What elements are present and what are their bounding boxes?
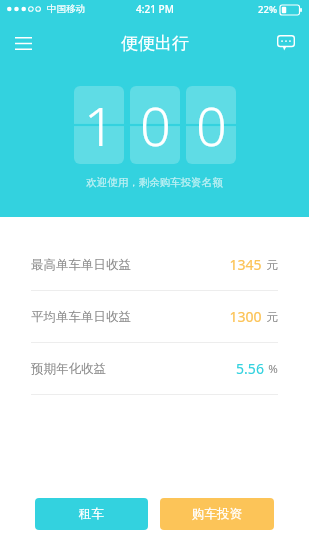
button[interactable]: 购车投资 [160,498,274,530]
staticText: 0 [196,88,227,162]
staticText: 租车 [79,506,104,522]
staticText: 预期年化收益 [31,361,106,377]
staticText: 1 [84,88,115,162]
button[interactable]: 平均单车单日收益 [0,291,309,342]
staticText: 平均单车单日收益 [31,309,131,325]
staticText: 购车投资 [192,506,242,522]
staticText: 1345 [229,255,262,274]
staticText: 中国移动 [47,3,85,15]
staticText: 元 [266,310,278,324]
staticText: 5.56 [236,359,264,378]
staticText: 欢迎使用，剩余购车投资名额 [86,176,223,189]
staticText: 1300 [229,307,262,326]
staticText: 4:21 PM [136,2,174,16]
staticText: 元 [266,258,278,272]
staticText: % [268,361,278,377]
button[interactable]: 最高单车单日收益 [0,239,309,290]
button[interactable]: 预期年化收益 [0,343,309,394]
staticText: 最高单车单日收益 [31,257,131,273]
staticText: 0 [140,88,171,162]
staticText: 22% [258,3,277,16]
button[interactable]: Menu [0,20,46,66]
button[interactable]: Messages [263,20,309,66]
button[interactable]: 租车 [35,498,148,530]
staticText: 便便出行 [121,33,189,54]
